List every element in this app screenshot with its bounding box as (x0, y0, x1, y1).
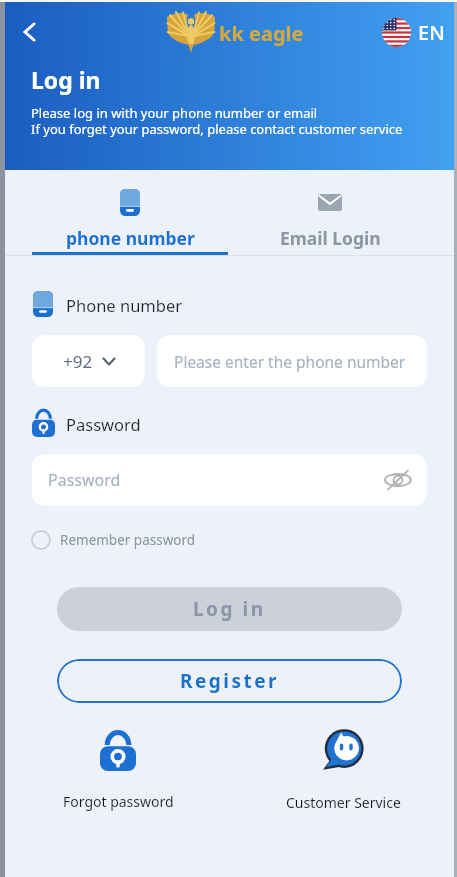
staticText: Password (66, 413, 141, 435)
staticText: +92 (63, 350, 93, 373)
button[interactable]: Customer Service (273, 729, 413, 812)
button[interactable]: Log in (57, 587, 402, 631)
button[interactable]: Password (32, 454, 427, 506)
staticText: phone number (66, 226, 195, 250)
staticText: Remember password (60, 531, 196, 549)
staticText: Password (48, 469, 121, 491)
staticText: Forgot password (63, 792, 174, 811)
button[interactable]: EN (382, 16, 445, 48)
button[interactable]: Register (57, 659, 402, 703)
staticText: kk eagle (219, 20, 304, 47)
staticText: Phone number (66, 294, 183, 316)
staticText: Please log in with your phone number or … (31, 104, 318, 122)
button[interactable] (12, 14, 48, 50)
staticText: Please enter the phone number (174, 351, 406, 372)
staticText: Register (180, 668, 280, 694)
staticText: Log in (193, 596, 266, 622)
button[interactable]: Email Login (232, 189, 428, 250)
staticText: EN (418, 19, 445, 46)
button[interactable]: Remember password (31, 529, 196, 551)
staticText: If you forget your password, please cont… (31, 120, 403, 138)
staticText: Email Login (280, 226, 381, 250)
button[interactable]: Please enter the phone number (157, 335, 427, 387)
button[interactable]: Forgot password (48, 731, 188, 811)
staticText: Log in (31, 64, 101, 95)
staticText: Customer Service (286, 793, 401, 812)
button[interactable]: phone number (32, 189, 228, 250)
button[interactable]: +92 (32, 335, 145, 387)
